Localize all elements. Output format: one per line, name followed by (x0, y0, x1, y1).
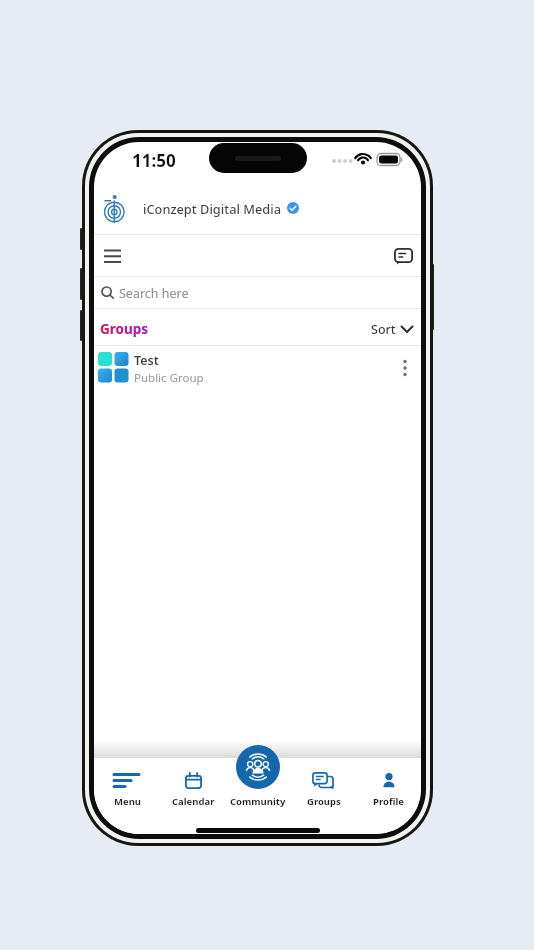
staticText: iConzept Digital Media (143, 200, 282, 217)
staticText: Groups (100, 320, 149, 338)
button[interactable]: Groups (291, 772, 356, 818)
staticText: Profile (373, 795, 404, 808)
staticText: Calendar (172, 795, 215, 808)
staticText: Groups (307, 795, 341, 808)
staticText: Public Group (134, 370, 204, 386)
staticText: Test (134, 352, 159, 369)
button[interactable] (226, 772, 291, 818)
button[interactable] (236, 745, 280, 789)
staticText: Search here (119, 285, 189, 302)
button[interactable]: Test (94, 346, 421, 390)
staticText: Sort (371, 321, 396, 338)
button[interactable]: Sort (367, 314, 417, 345)
staticText: 11:50 (132, 149, 176, 172)
button[interactable] (386, 240, 420, 272)
button[interactable]: Calendar (160, 772, 226, 818)
button[interactable]: Profile (356, 772, 421, 818)
button[interactable]: Search here (94, 277, 421, 309)
button[interactable] (96, 241, 130, 273)
button[interactable]: Menu (94, 772, 160, 818)
staticText: Community (230, 795, 286, 808)
staticText: Menu (114, 795, 141, 808)
